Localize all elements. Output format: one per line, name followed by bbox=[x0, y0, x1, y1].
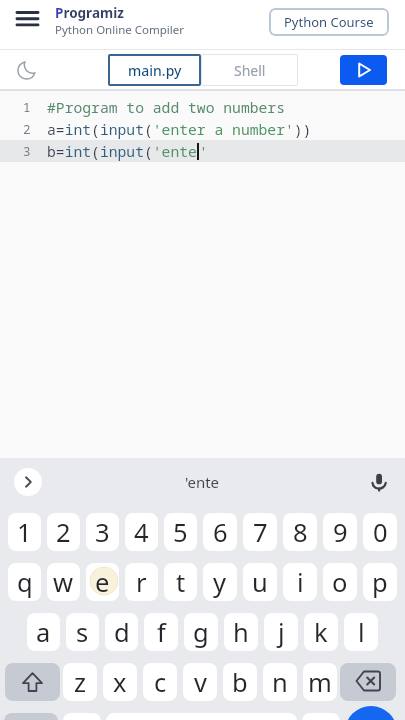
staticText: t bbox=[176, 565, 186, 600]
button[interactable]: r bbox=[125, 563, 158, 601]
staticText: s bbox=[76, 615, 89, 650]
staticText: c bbox=[154, 665, 167, 700]
staticText: o bbox=[332, 565, 348, 600]
staticText: 2 bbox=[23, 121, 31, 138]
button[interactable]: c bbox=[143, 663, 177, 701]
staticText: Programiz bbox=[55, 4, 124, 22]
button[interactable] bbox=[106, 713, 297, 720]
staticText: j bbox=[278, 615, 285, 650]
button[interactable]: v bbox=[183, 663, 217, 701]
button[interactable]: w bbox=[47, 563, 80, 601]
button[interactable]: n bbox=[263, 663, 297, 701]
button[interactable] bbox=[340, 55, 387, 85]
button[interactable]: x bbox=[103, 663, 137, 701]
button[interactable]: s bbox=[66, 613, 99, 651]
button[interactable]: 4 bbox=[125, 513, 158, 551]
staticText: 4 bbox=[134, 515, 149, 550]
button[interactable]: 'ente bbox=[185, 472, 220, 492]
staticText: 8 bbox=[293, 515, 308, 550]
staticText: ' bbox=[199, 141, 208, 161]
staticText: 9 bbox=[333, 515, 348, 550]
staticText: x bbox=[113, 665, 127, 700]
staticText: v bbox=[194, 665, 207, 700]
button[interactable]: 6 bbox=[203, 513, 237, 551]
staticText: i bbox=[297, 565, 304, 600]
button[interactable]: e bbox=[86, 563, 119, 601]
staticText: q bbox=[17, 565, 33, 600]
button[interactable]: k bbox=[304, 613, 338, 651]
staticText: n bbox=[272, 665, 288, 700]
button[interactable]: t bbox=[164, 563, 197, 601]
staticText: z bbox=[74, 665, 86, 700]
button[interactable]: Shell bbox=[201, 54, 298, 86]
button[interactable]: y bbox=[203, 563, 237, 601]
staticText: 2 bbox=[56, 515, 71, 550]
staticText: 1 bbox=[23, 99, 31, 116]
button[interactable]: 2 bbox=[47, 513, 80, 551]
button[interactable]: 1 bbox=[8, 513, 41, 551]
button[interactable]: j bbox=[264, 613, 298, 651]
staticText: main.py bbox=[128, 61, 182, 80]
button[interactable]: , bbox=[63, 713, 101, 720]
staticText: 3 bbox=[23, 143, 31, 160]
button[interactable]: 7 bbox=[243, 513, 277, 551]
staticText: m bbox=[308, 665, 332, 700]
staticText: h bbox=[233, 615, 249, 650]
button[interactable]: b bbox=[223, 663, 257, 701]
staticText: f bbox=[157, 615, 166, 650]
staticText: b bbox=[232, 665, 248, 700]
button[interactable] bbox=[14, 468, 42, 496]
button[interactable] bbox=[16, 4, 40, 34]
staticText: Shell bbox=[234, 61, 266, 80]
staticText: e bbox=[95, 565, 110, 600]
staticText: y bbox=[213, 565, 227, 600]
button[interactable] bbox=[14, 57, 40, 83]
staticText: 0 bbox=[373, 515, 388, 550]
staticText: k bbox=[314, 615, 328, 650]
staticText: b=int(input('ente bbox=[47, 141, 197, 161]
button[interactable] bbox=[345, 706, 397, 720]
staticText: 5 bbox=[173, 515, 188, 550]
button[interactable]: Python Course bbox=[269, 8, 389, 36]
button[interactable]: z bbox=[63, 663, 97, 701]
staticText: w bbox=[53, 565, 74, 600]
staticText: p bbox=[372, 565, 388, 600]
button[interactable] bbox=[367, 470, 391, 494]
staticText: Python Course bbox=[284, 13, 374, 31]
staticText: Python Online Compiler bbox=[55, 22, 184, 38]
staticText: g bbox=[193, 615, 209, 650]
button[interactable]: p bbox=[363, 563, 397, 601]
button[interactable]: f bbox=[144, 613, 178, 651]
button[interactable]: i bbox=[283, 563, 317, 601]
button[interactable]: a bbox=[27, 613, 60, 651]
button[interactable] bbox=[5, 663, 60, 701]
button[interactable]: 3 bbox=[86, 513, 119, 551]
button[interactable]: m bbox=[303, 663, 337, 701]
button[interactable]: g bbox=[184, 613, 218, 651]
button[interactable]: l bbox=[344, 613, 378, 651]
button[interactable]: . bbox=[302, 713, 340, 720]
button[interactable]: u bbox=[243, 563, 277, 601]
staticText: u bbox=[252, 565, 268, 600]
staticText: d bbox=[114, 615, 130, 650]
button[interactable]: 8 bbox=[283, 513, 317, 551]
staticText: a bbox=[36, 615, 51, 650]
button[interactable] bbox=[340, 663, 396, 701]
staticText: 6 bbox=[213, 515, 228, 550]
button[interactable]: q bbox=[8, 563, 41, 601]
staticText: #Program to add two numbers bbox=[47, 97, 285, 117]
button[interactable]: 5 bbox=[164, 513, 197, 551]
button[interactable]: d bbox=[105, 613, 138, 651]
staticText: 3 bbox=[95, 515, 110, 550]
staticText: a=int(input('enter a number')) bbox=[47, 119, 312, 139]
button[interactable] bbox=[4, 713, 58, 720]
button[interactable]: main.py bbox=[108, 54, 201, 86]
button[interactable]: h bbox=[224, 613, 258, 651]
staticText: r bbox=[136, 565, 147, 600]
staticText: l bbox=[358, 615, 365, 650]
staticText: 7 bbox=[253, 515, 268, 550]
button[interactable]: o bbox=[323, 563, 357, 601]
button[interactable]: 0 bbox=[363, 513, 397, 551]
button[interactable]: 9 bbox=[323, 513, 357, 551]
